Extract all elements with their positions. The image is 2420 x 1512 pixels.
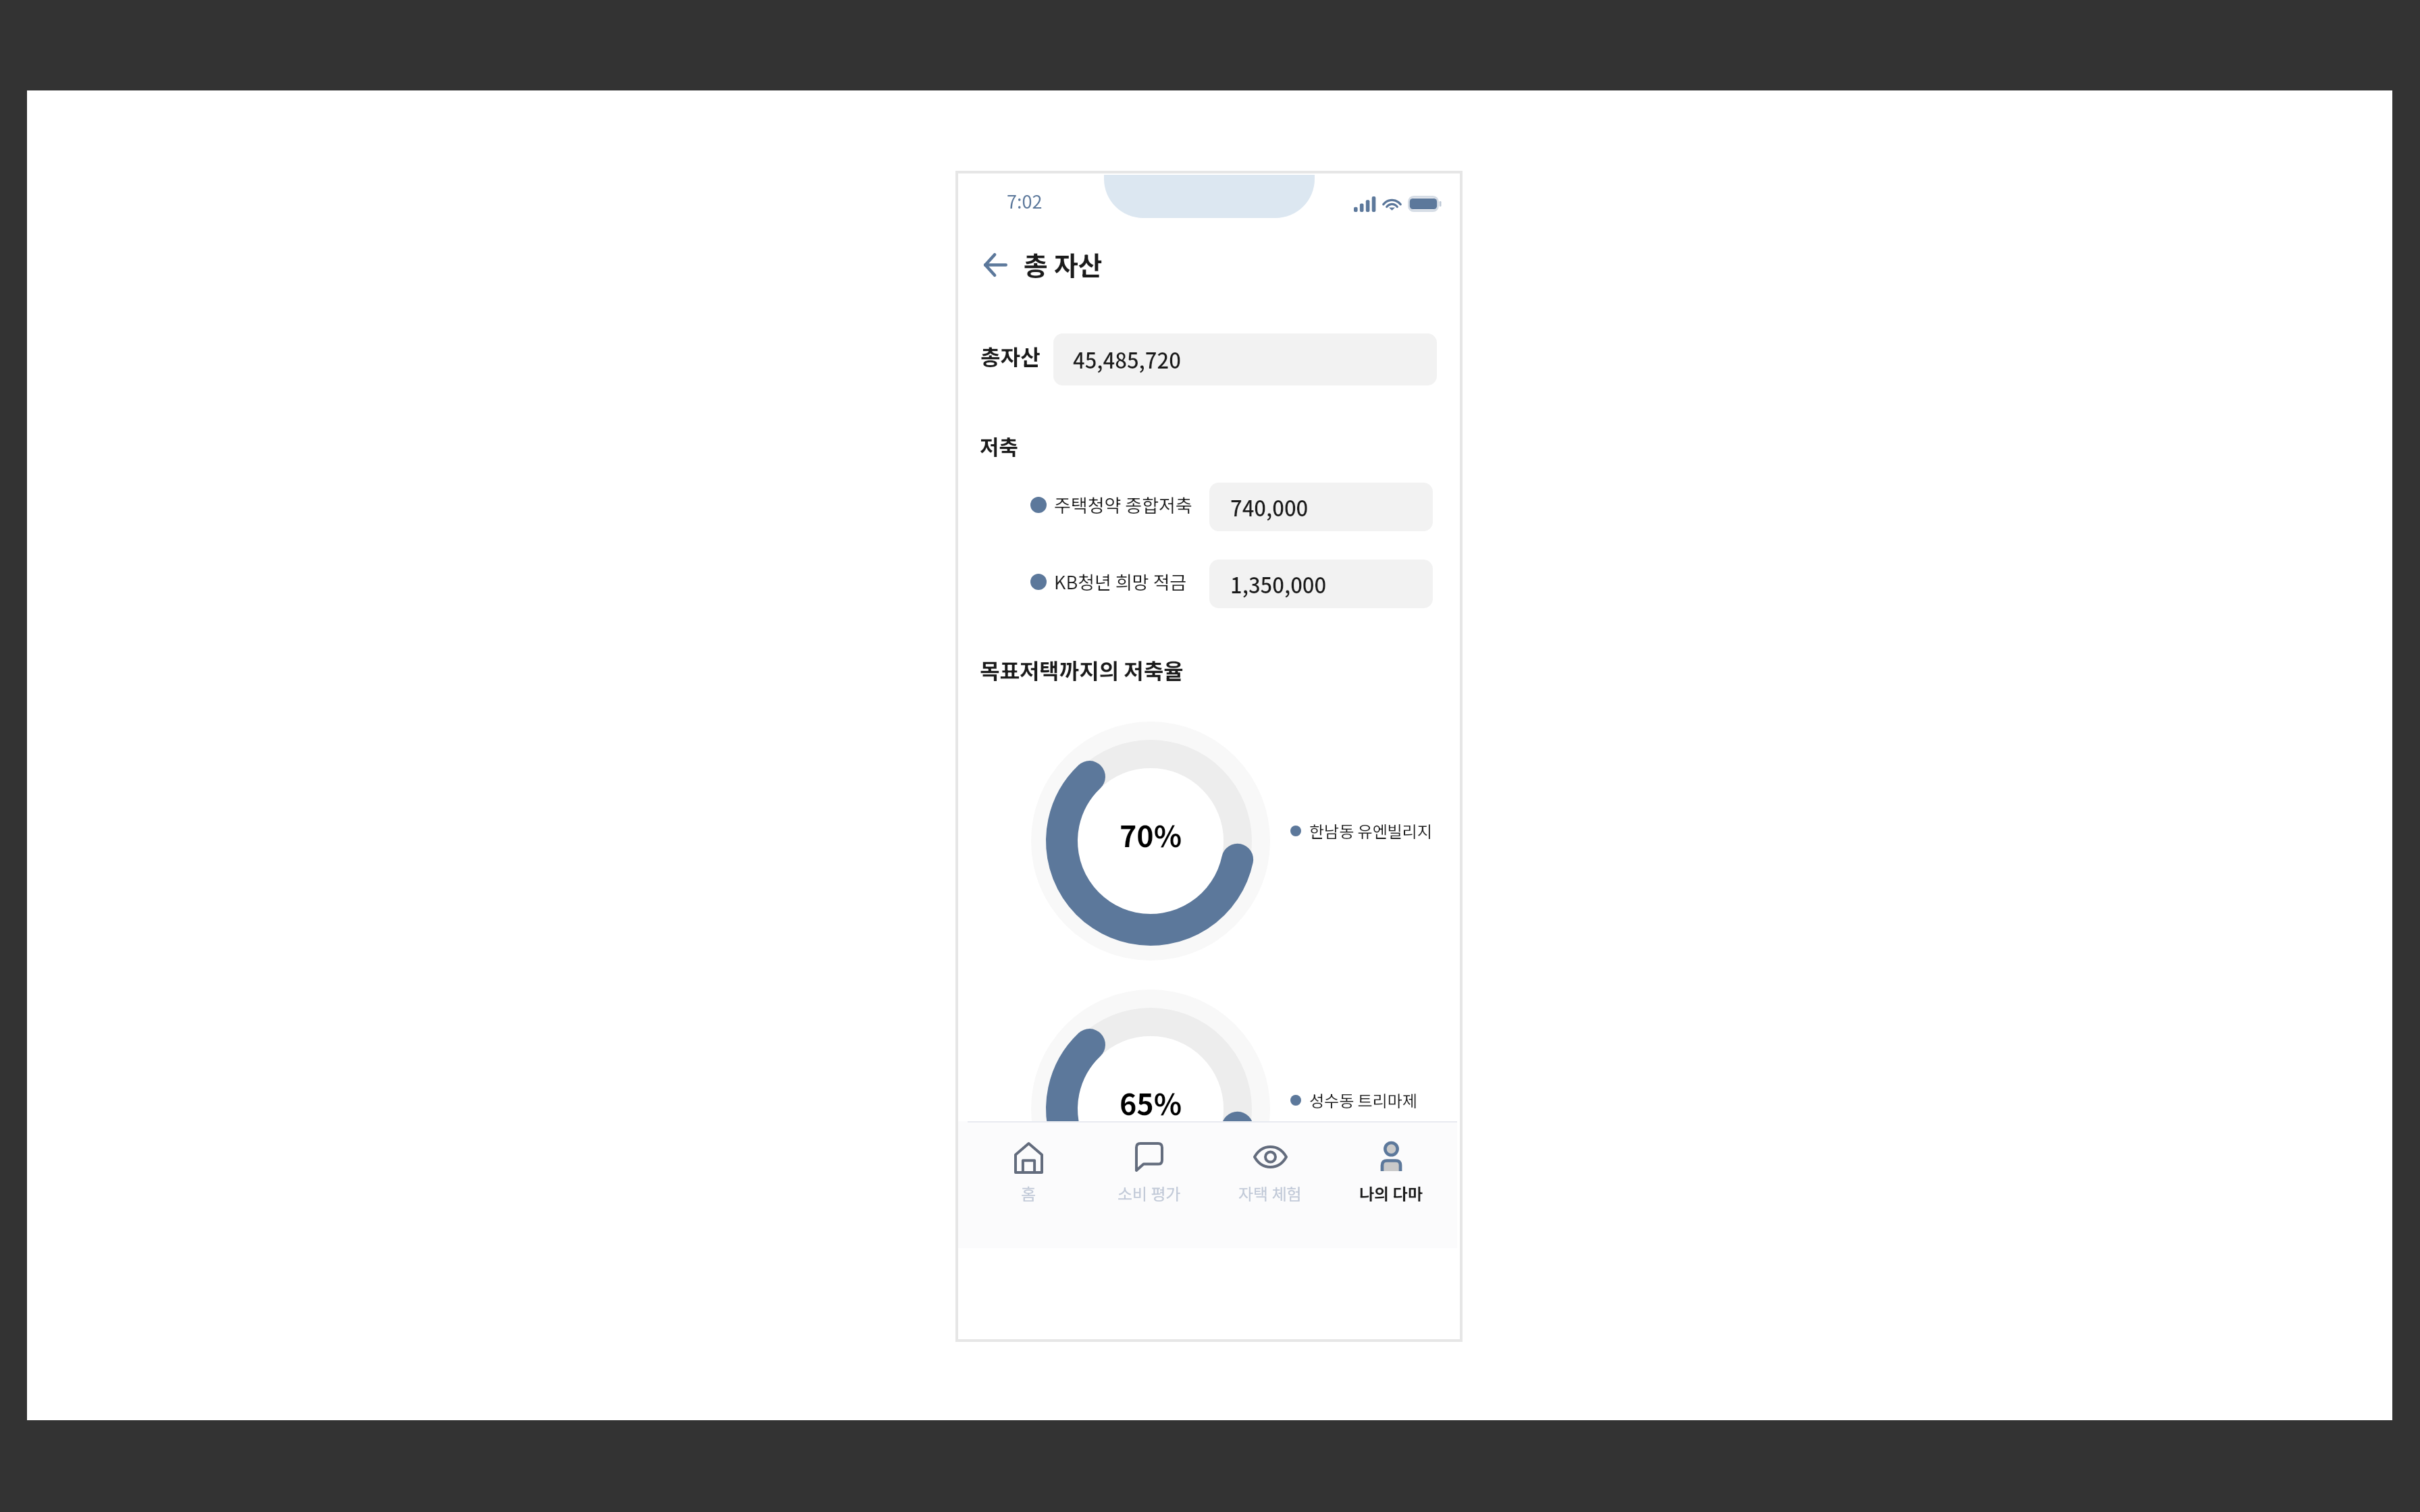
staticText: 소비 평가 xyxy=(1117,1181,1181,1205)
button[interactable]: 홈 xyxy=(968,1121,1088,1247)
staticText: 주택청약 종합저축 xyxy=(1054,491,1192,518)
button[interactable]: Savings progress 65% xyxy=(1030,989,1271,1229)
staticText: 성수동 트리마제 xyxy=(1309,1088,1417,1112)
staticText: 1,350,000 xyxy=(1230,569,1327,599)
staticText: 70% xyxy=(1120,813,1182,855)
staticText: 나의 다마 xyxy=(1359,1181,1423,1205)
button[interactable]: 성수동 트리마제 xyxy=(1288,1084,1429,1111)
button[interactable]: Savings progress 70% xyxy=(1030,721,1271,961)
button[interactable]: 나의 다마 xyxy=(1331,1121,1451,1247)
button[interactable]: 740,000 xyxy=(1209,483,1433,531)
staticText: 한남동 유엔빌리지 xyxy=(1309,819,1433,842)
staticText: KB청년 희망 적금 xyxy=(1054,568,1187,595)
staticText: 총 자산 xyxy=(1024,245,1103,283)
staticText: 홈 xyxy=(1021,1181,1036,1205)
button[interactable]: 소비 평가 xyxy=(1089,1121,1209,1247)
button[interactable]: 자택 체험 xyxy=(1210,1121,1330,1247)
button[interactable]: 한남동 유엔빌리지 xyxy=(1288,815,1429,842)
button[interactable]: 1,350,000 xyxy=(1209,560,1433,608)
button[interactable]: 45,485,720 xyxy=(1053,333,1437,385)
staticText: 총자산 xyxy=(980,340,1041,371)
staticText: 저축 xyxy=(980,431,1019,461)
staticText: 목표저택까지의 저축율 xyxy=(980,654,1184,685)
staticText: 자택 체험 xyxy=(1238,1181,1302,1205)
staticText: 65% xyxy=(1120,1081,1182,1123)
staticText: 7:02 xyxy=(1007,188,1043,214)
staticText: 45,485,720 xyxy=(1073,344,1181,375)
staticText: 740,000 xyxy=(1230,492,1309,522)
button[interactable]: Back xyxy=(974,244,1016,286)
